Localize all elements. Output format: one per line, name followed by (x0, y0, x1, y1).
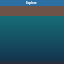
staticText: Explore (26, 1, 37, 5)
